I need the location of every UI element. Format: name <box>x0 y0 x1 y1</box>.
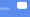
staticText: Hello <box>0 6 9 11</box>
